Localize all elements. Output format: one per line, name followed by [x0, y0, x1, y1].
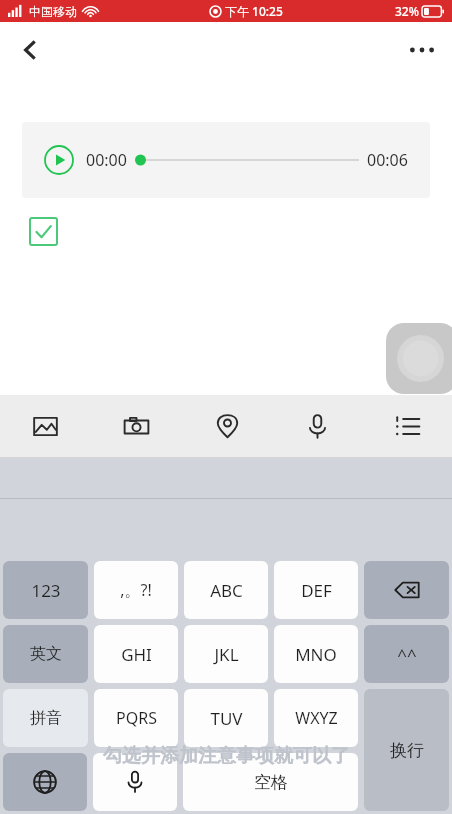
button[interactable]: DEF — [274, 561, 358, 619]
button[interactable]: Checked item — [30, 218, 57, 245]
staticText: 换行 — [390, 740, 424, 761]
button[interactable]: 空格 — [183, 753, 358, 811]
staticText: 英文 — [30, 644, 62, 664]
button[interactable]: Location — [182, 395, 272, 458]
staticText: ^^ — [397, 643, 417, 666]
button[interactable]: GHI — [94, 625, 178, 683]
button[interactable]: PQRS — [94, 689, 178, 747]
staticText: 勾选并添加注意事项就可以了 — [103, 744, 350, 768]
button[interactable]: ^^ — [364, 625, 449, 683]
button[interactable]: 123 — [3, 561, 88, 619]
staticText: TUV — [210, 707, 243, 730]
button[interactable]: ,。?! — [94, 561, 178, 619]
button[interactable]: Backspace — [364, 561, 449, 619]
button[interactable]: List — [362, 395, 452, 458]
button[interactable]: Back — [8, 28, 52, 72]
staticText: 00:06 — [367, 149, 408, 171]
button[interactable]: Assistive touch — [386, 323, 452, 394]
button[interactable]: WXYZ — [274, 689, 358, 747]
staticText: ,。?! — [120, 579, 152, 601]
staticText: 中国移动 — [29, 4, 77, 19]
button[interactable]: TUV — [184, 689, 268, 747]
staticText: GHI — [121, 643, 152, 666]
button[interactable]: Image — [0, 395, 91, 458]
button[interactable]: Play — [22, 122, 430, 198]
staticText: 00:00 — [86, 149, 127, 171]
staticText: WXYZ — [295, 707, 338, 729]
button[interactable]: Language — [3, 753, 87, 811]
staticText: 空格 — [254, 772, 288, 793]
button[interactable]: More options — [400, 28, 444, 72]
staticText: DEF — [301, 579, 332, 602]
staticText: MNO — [295, 643, 337, 666]
button[interactable]: JKL — [184, 625, 268, 683]
button[interactable]: 换行 — [364, 689, 449, 811]
staticText: PQRS — [116, 707, 157, 729]
button[interactable]: Play — [44, 145, 74, 175]
staticText: ABC — [210, 579, 243, 602]
button[interactable]: ABC — [184, 561, 268, 619]
button[interactable]: Voice input — [93, 753, 177, 811]
staticText: JKL — [214, 643, 239, 666]
staticText: 32% — [395, 3, 419, 19]
button[interactable]: 英文 — [3, 625, 88, 683]
button[interactable]: Camera — [91, 395, 182, 458]
button[interactable]: 拼音 — [3, 689, 88, 747]
button[interactable]: MNO — [274, 625, 358, 683]
button[interactable]: Voice — [272, 395, 362, 458]
staticText: 拼音 — [30, 708, 62, 728]
staticText: 123 — [31, 579, 61, 602]
staticText: 下午 10:25 — [225, 3, 283, 19]
